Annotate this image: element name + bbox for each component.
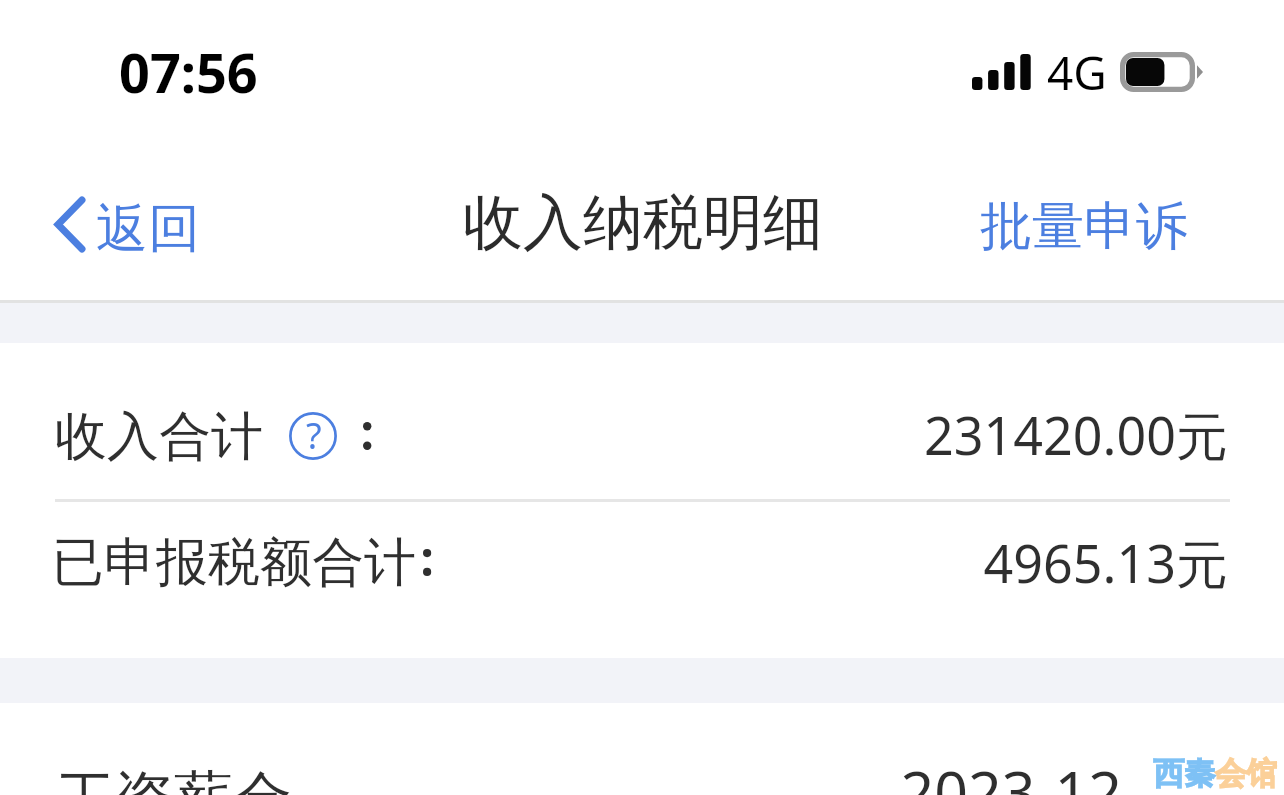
button[interactable]: 收入合计说明 — [289, 412, 337, 460]
staticText: 4G — [1047, 41, 1107, 104]
staticText: 会馆 — [1215, 754, 1277, 793]
staticText: 返回 — [96, 196, 200, 262]
button[interactable]: 收入合计 — [0, 343, 1284, 500]
button[interactable]: 已申报税额合计 — [0, 502, 1284, 658]
staticText: 西秦 — [1153, 754, 1215, 793]
button[interactable]: 返回 — [0, 183, 220, 265]
staticText: ? — [306, 411, 322, 459]
staticText: 批量申诉 — [980, 194, 1188, 260]
staticText: 收入合计 — [55, 404, 263, 470]
staticText: 07:56 — [119, 35, 258, 109]
button[interactable]: 批量申诉 — [962, 184, 1206, 270]
staticText: 收入纳税明细 — [463, 185, 823, 261]
other: 信号强度 — [972, 54, 1031, 90]
staticText: 4965.13元 — [0, 527, 1228, 598]
button[interactable]: 工资薪金 — [0, 703, 1284, 795]
staticText: 231420.00元 — [0, 399, 1228, 470]
staticText: 已申报税额合计 — [52, 530, 416, 596]
staticText: 工资薪金 — [56, 762, 292, 795]
other: 电量 — [1120, 52, 1203, 92]
staticText: 2023-12 — [0, 751, 1122, 795]
